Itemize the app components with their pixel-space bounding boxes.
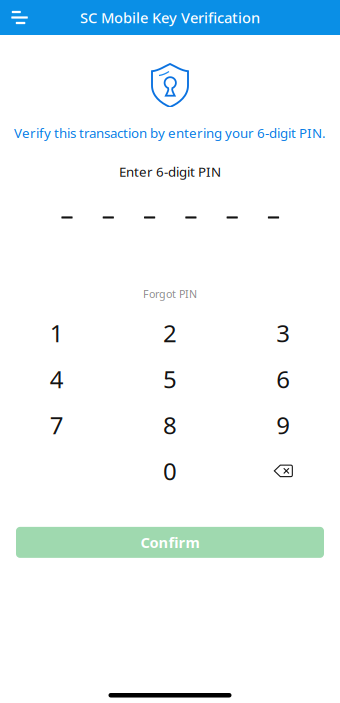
button[interactable]: 3 <box>227 310 340 356</box>
button[interactable]: 2 <box>113 310 227 356</box>
button[interactable]: Confirm <box>16 527 324 558</box>
button[interactable]: 4 <box>0 356 113 402</box>
button[interactable]: 9 <box>227 402 340 448</box>
staticText: 5 <box>163 363 177 395</box>
staticText: Enter 6-digit PIN <box>119 163 221 180</box>
staticText: Confirm <box>140 533 199 552</box>
staticText: 7 <box>50 409 64 441</box>
staticText: 1 <box>50 317 64 349</box>
button[interactable]: 1 <box>0 310 113 356</box>
staticText: 8 <box>163 409 177 441</box>
staticText: 9 <box>276 409 290 441</box>
button[interactable]: 6 <box>227 356 340 402</box>
button[interactable]: 0 <box>113 448 227 494</box>
staticText: 3 <box>276 317 290 349</box>
staticText: 6 <box>276 363 290 395</box>
button[interactable]: Delete <box>227 448 340 494</box>
button[interactable]: 8 <box>113 402 227 448</box>
button[interactable]: 7 <box>0 402 113 448</box>
button[interactable]: Menu <box>0 2 40 33</box>
staticText: Forgot PIN <box>143 287 197 301</box>
staticText: 0 <box>163 455 177 487</box>
staticText: 2 <box>163 317 177 349</box>
staticText: Verify this transaction by entering your… <box>14 124 326 142</box>
button[interactable]: 5 <box>113 356 227 402</box>
staticText: SC Mobile Key Verification <box>80 8 260 27</box>
button[interactable]: Forgot PIN <box>143 287 197 301</box>
staticText: 4 <box>50 363 64 395</box>
